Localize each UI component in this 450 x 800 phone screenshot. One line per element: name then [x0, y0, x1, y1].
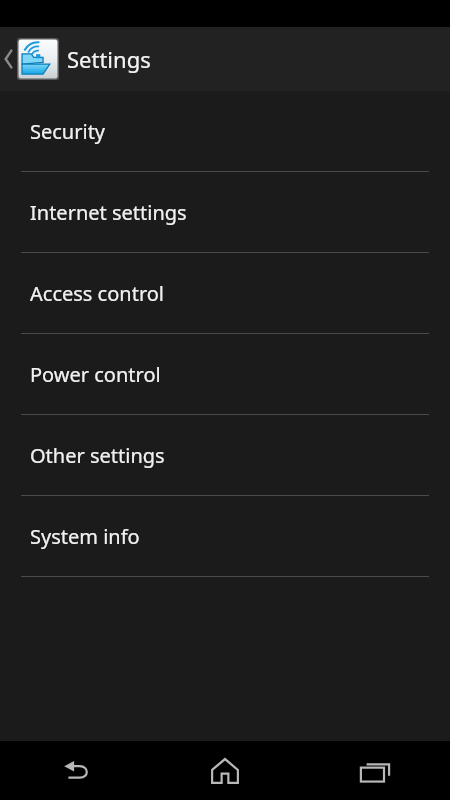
other: Up	[2, 44, 15, 74]
staticText: Internet settings	[30, 199, 187, 226]
button[interactable]: Access control	[0, 253, 450, 334]
button[interactable]: Back	[0, 741, 150, 800]
staticText: Access control	[30, 280, 165, 307]
button[interactable]: Security	[0, 91, 450, 172]
staticText: Security	[30, 118, 106, 145]
button[interactable]: Power control	[0, 334, 450, 415]
button[interactable]: Recent apps	[300, 741, 450, 800]
staticText: Other settings	[30, 442, 165, 469]
staticText: Power control	[30, 361, 161, 388]
button[interactable]: Internet settings	[0, 172, 450, 253]
button[interactable]: Home	[150, 741, 300, 800]
staticText: System info	[30, 523, 140, 550]
button[interactable]: Up	[0, 27, 450, 91]
staticText: Settings	[67, 44, 151, 74]
button[interactable]: Other settings	[0, 415, 450, 496]
button[interactable]: System info	[0, 496, 450, 577]
